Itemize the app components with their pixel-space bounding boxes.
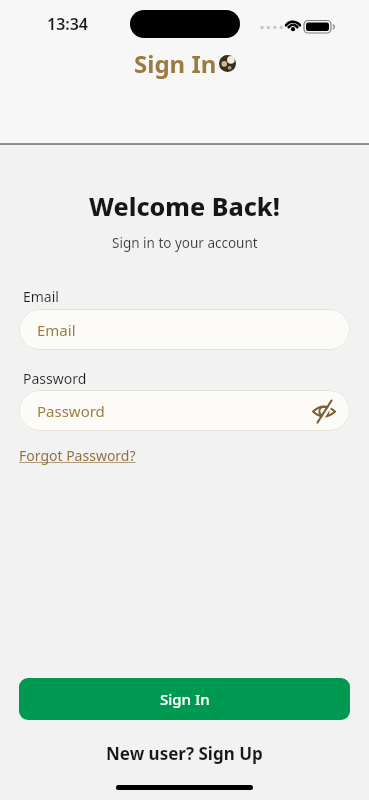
staticText: Password (37, 401, 105, 421)
button[interactable]: Sign In (19, 678, 350, 720)
staticText: Email (23, 287, 59, 306)
staticText: Email (37, 320, 76, 340)
button[interactable]: Forgot Password? (19, 446, 136, 465)
staticText: Sign In (160, 689, 210, 709)
button[interactable]: Password (19, 390, 350, 431)
button[interactable]: New user? Sign Up (106, 742, 263, 765)
staticText: New user? Sign Up (106, 742, 263, 765)
button[interactable]: Email (19, 309, 350, 350)
staticText: Welcome Back! (89, 189, 280, 223)
staticText: Sign in to your account (112, 234, 258, 252)
button[interactable] (312, 399, 336, 423)
staticText: Forgot Password? (19, 446, 136, 465)
staticText: Sign In (134, 47, 217, 80)
staticText: 13:34 (47, 13, 89, 35)
staticText: Password (23, 369, 87, 388)
